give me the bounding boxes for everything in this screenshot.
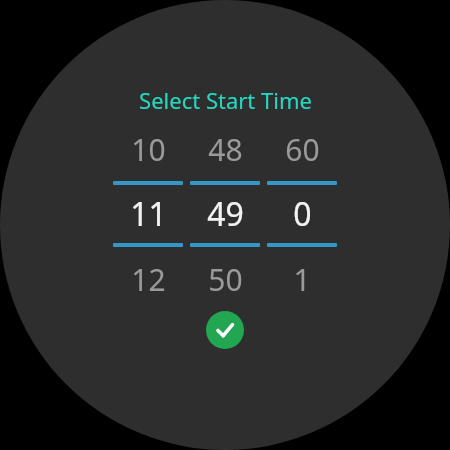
staticText: 48 (208, 129, 243, 170)
button[interactable]: Select Start Time (139, 85, 312, 115)
staticText: 0 (293, 192, 312, 236)
button[interactable]: 48 (190, 127, 260, 171)
staticText: 50 (208, 259, 243, 300)
staticText: 12 (131, 259, 166, 300)
button[interactable]: 60 (267, 127, 337, 171)
staticText: 49 (207, 192, 244, 236)
staticText: 10 (131, 129, 166, 170)
staticText: Select Start Time (139, 85, 312, 115)
button[interactable]: 49 (190, 185, 260, 243)
staticText: 11 (130, 192, 167, 236)
button[interactable]: 11 (113, 185, 183, 243)
staticText: 60 (285, 129, 320, 170)
button[interactable]: 50 (190, 257, 260, 301)
button[interactable]: 12 (113, 257, 183, 301)
button[interactable]: 0 (267, 185, 337, 243)
button[interactable]: 1 (267, 257, 337, 301)
staticText: 1 (293, 259, 311, 300)
button[interactable]: Confirm (206, 311, 244, 349)
button[interactable]: 10 (113, 127, 183, 171)
